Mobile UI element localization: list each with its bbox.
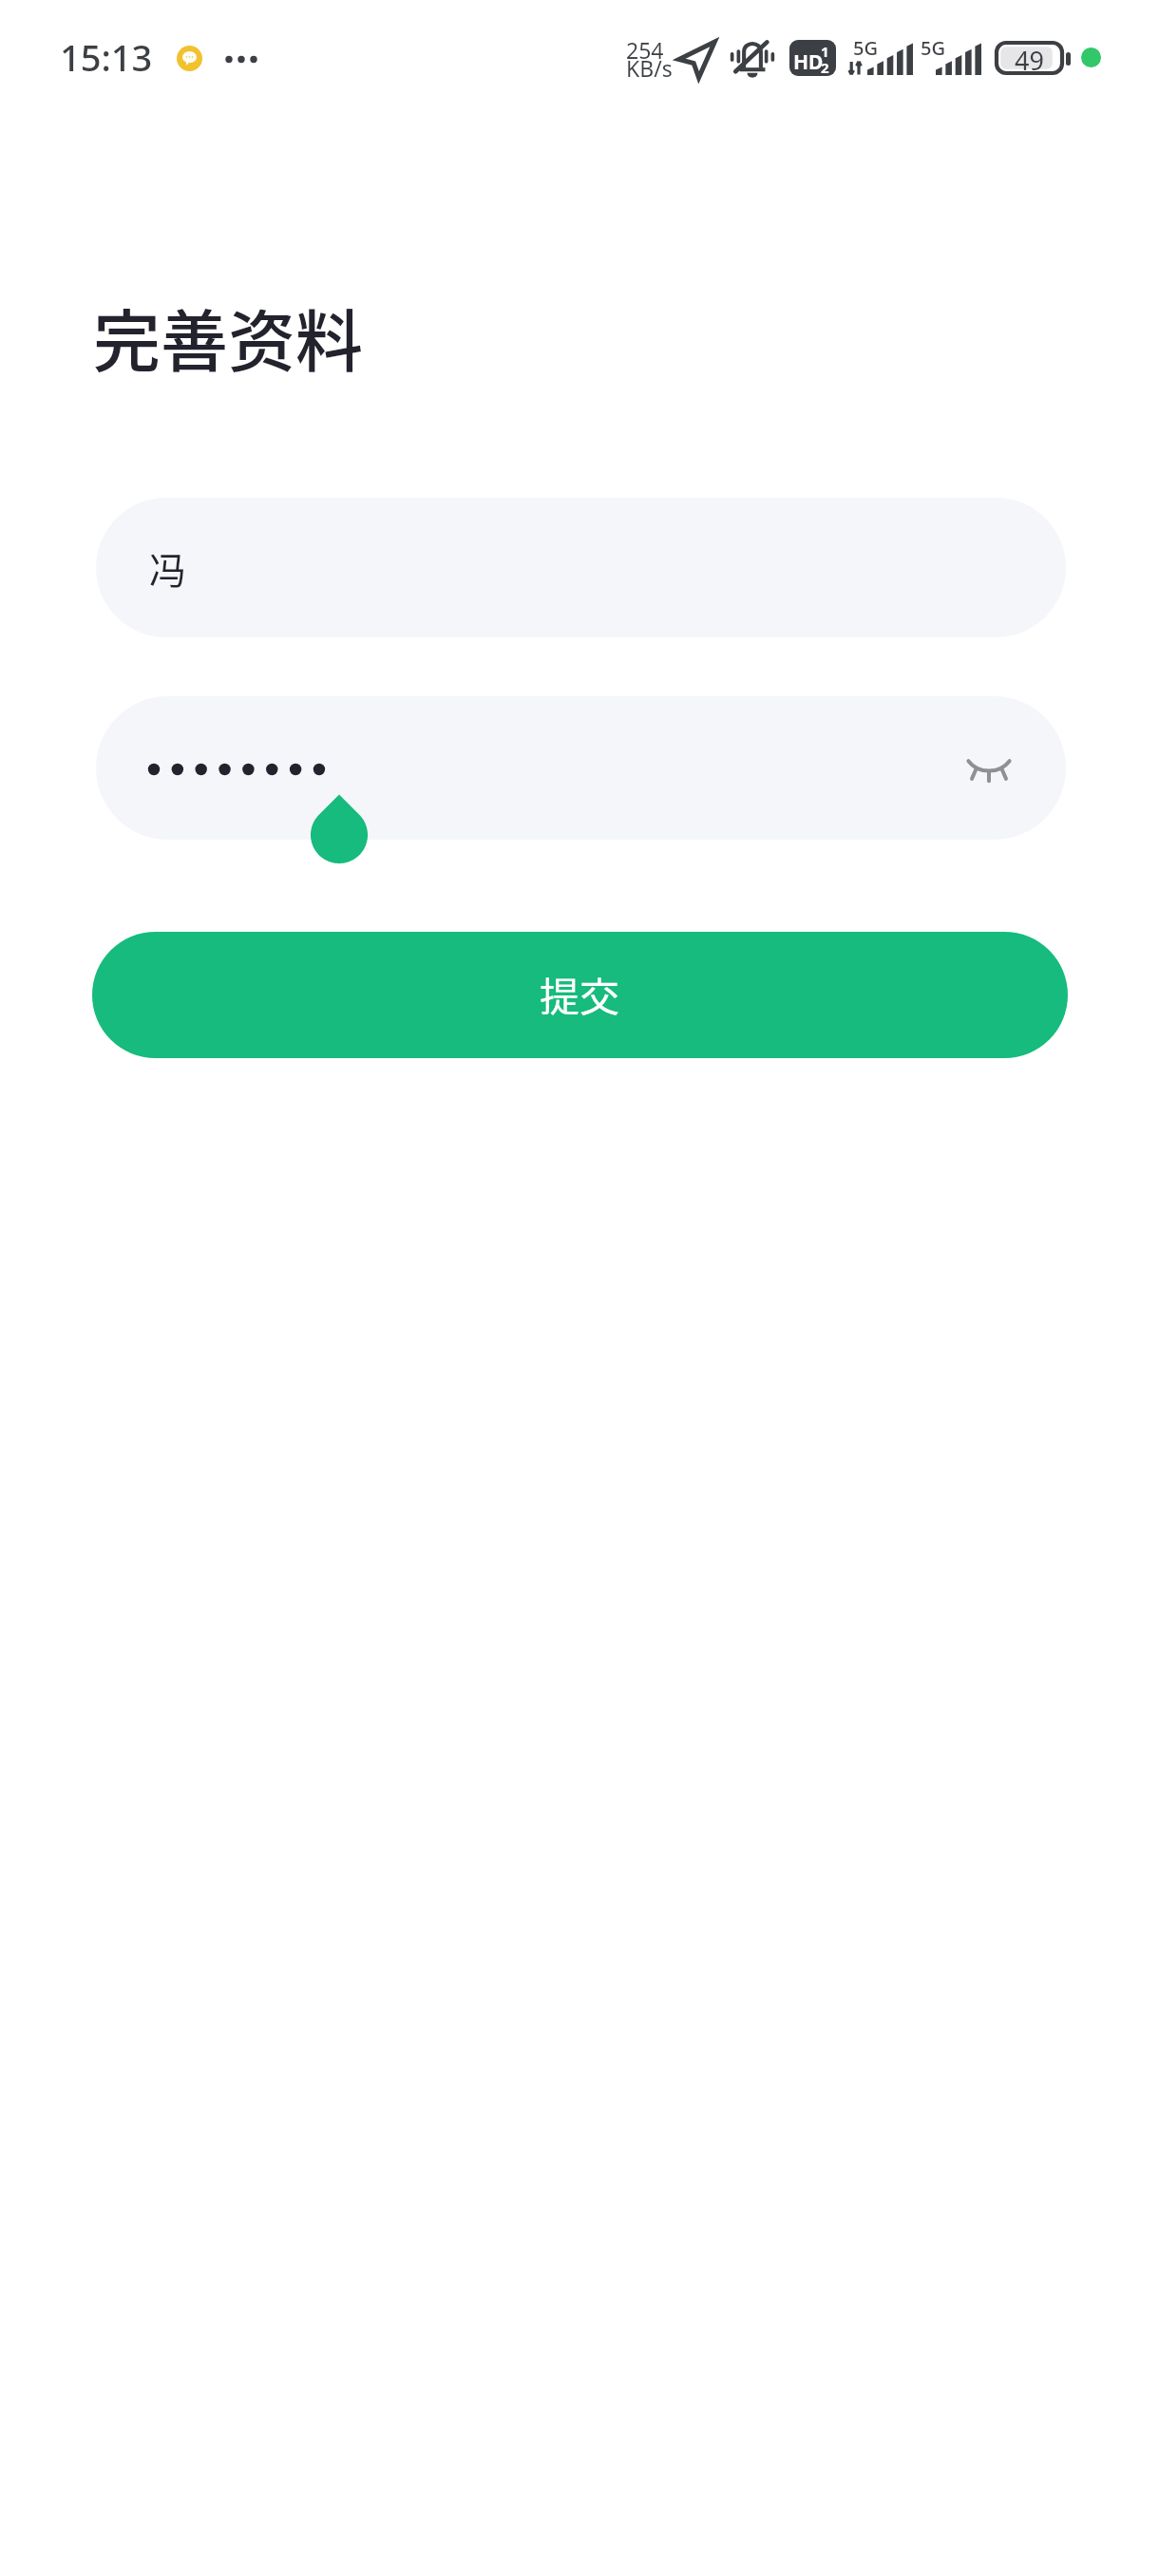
staticText: 5G bbox=[921, 35, 945, 61]
staticText: 5G bbox=[853, 35, 878, 61]
button[interactable]: Show password bbox=[96, 696, 1066, 840]
button[interactable]: 提交 bbox=[92, 932, 1068, 1058]
staticText: 15:13 bbox=[60, 32, 153, 82]
staticText: KB/s bbox=[626, 53, 673, 83]
staticText: HD bbox=[793, 48, 824, 76]
staticText: 49 bbox=[1015, 43, 1044, 78]
staticText: 2 bbox=[821, 58, 829, 76]
staticText: 提交 bbox=[540, 965, 620, 1023]
button[interactable]: Show password bbox=[938, 730, 1040, 808]
staticText: 1 bbox=[821, 42, 829, 61]
staticText: 冯 bbox=[149, 541, 187, 595]
button[interactable]: 冯 bbox=[96, 498, 1066, 637]
staticText: 254 bbox=[626, 35, 664, 65]
staticText: 完善资料 bbox=[93, 288, 364, 386]
